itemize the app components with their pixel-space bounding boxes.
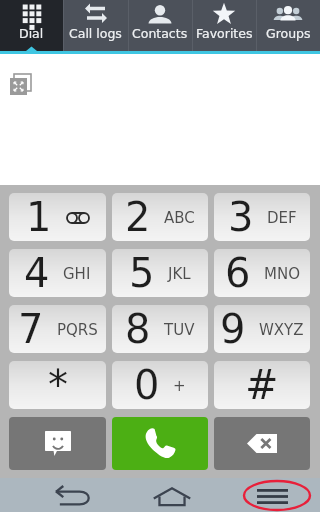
- staticText: 5: [129, 250, 155, 297]
- button[interactable]: Favorites: [192, 0, 256, 51]
- button[interactable]: Call: [112, 417, 208, 470]
- staticText: Groups: [266, 26, 311, 41]
- staticText: WXYZ: [259, 321, 304, 338]
- staticText: 6: [225, 250, 251, 297]
- button[interactable]: Message: [9, 417, 106, 470]
- staticText: #: [245, 362, 279, 409]
- staticText: GHI: [63, 265, 91, 282]
- button[interactable]: 3: [214, 193, 310, 241]
- button[interactable]: Backspace: [214, 417, 310, 470]
- button[interactable]: *: [9, 361, 106, 409]
- staticText: 2: [125, 194, 151, 241]
- staticText: Dial: [19, 26, 44, 41]
- staticText: JKL: [168, 265, 191, 282]
- button[interactable]: 6: [214, 249, 310, 297]
- staticText: PQRS: [57, 321, 98, 338]
- button[interactable]: 0: [112, 361, 208, 409]
- button[interactable]: 5: [112, 249, 208, 297]
- button[interactable]: Contacts: [128, 0, 192, 51]
- staticText: Contacts: [132, 26, 188, 41]
- button[interactable]: Menu: [248, 484, 296, 508]
- staticText: Call logs: [69, 26, 122, 41]
- button[interactable]: 2: [112, 193, 208, 241]
- button[interactable]: 7: [9, 305, 106, 353]
- staticText: DEF: [267, 209, 297, 226]
- button[interactable]: Call logs: [63, 0, 128, 51]
- staticText: 8: [125, 306, 151, 353]
- staticText: 3: [228, 194, 254, 241]
- staticText: TUV: [164, 321, 195, 338]
- staticText: 1: [26, 194, 52, 241]
- button[interactable]: Multi window: [8, 72, 34, 98]
- staticText: Favorites: [196, 26, 253, 41]
- staticText: 4: [24, 250, 50, 297]
- button[interactable]: 4: [9, 249, 106, 297]
- staticText: 9: [220, 306, 246, 353]
- staticText: ABC: [164, 209, 195, 226]
- button[interactable]: Back: [48, 484, 96, 508]
- button[interactable]: 8: [112, 305, 208, 353]
- staticText: 7: [18, 306, 44, 353]
- staticText: +: [173, 377, 186, 394]
- button[interactable]: 1: [9, 193, 106, 241]
- button[interactable]: 9: [214, 305, 310, 353]
- button[interactable]: Dial: [0, 0, 63, 51]
- button[interactable]: Groups: [256, 0, 320, 51]
- staticText: MNO: [264, 265, 300, 282]
- staticText: 0: [134, 362, 160, 409]
- button[interactable]: #: [214, 361, 310, 409]
- staticText: *: [48, 362, 68, 409]
- button[interactable]: Home: [148, 484, 196, 508]
